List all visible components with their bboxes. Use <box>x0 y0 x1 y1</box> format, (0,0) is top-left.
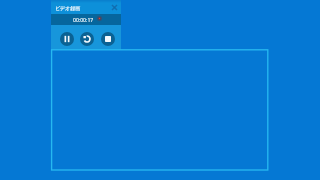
button[interactable]: 停止 <box>101 32 115 46</box>
button[interactable]: 閉じる <box>109 2 120 13</box>
staticText: 00:00:17 <box>73 17 94 24</box>
button[interactable]: リスタート <box>80 32 94 46</box>
button[interactable]: 一時停止 <box>60 32 74 46</box>
staticText: ビデオ録画 <box>55 5 81 11</box>
